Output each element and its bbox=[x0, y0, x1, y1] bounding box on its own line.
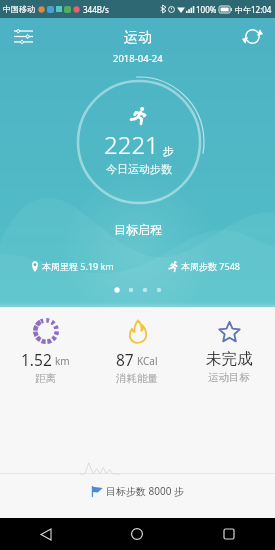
staticText: 目标步数 8000 步 bbox=[106, 484, 185, 498]
staticText: 运动目标 bbox=[208, 371, 250, 384]
button[interactable]: Settings bbox=[8, 21, 38, 51]
button[interactable]: Back bbox=[0, 518, 91, 550]
staticText: 2221 bbox=[104, 128, 159, 161]
staticText: km bbox=[55, 354, 70, 368]
staticText: 距离 bbox=[35, 372, 56, 385]
staticText: 100% bbox=[196, 4, 217, 15]
staticText: 1.52 bbox=[21, 349, 52, 370]
button[interactable]: 87 bbox=[91, 315, 183, 387]
staticText: 本周步数 7548 bbox=[181, 260, 240, 272]
staticText: 本周里程 5.19 km bbox=[42, 260, 114, 272]
staticText: 运动 bbox=[124, 29, 152, 47]
staticText: KCal bbox=[137, 354, 158, 368]
staticText: 87 bbox=[116, 349, 134, 370]
staticText: 今日运动步数 bbox=[106, 162, 172, 176]
button[interactable]: Recent apps bbox=[183, 518, 275, 550]
button[interactable]: Home bbox=[91, 518, 183, 550]
staticText: 未完成 bbox=[206, 349, 253, 369]
button[interactable]: 目标步数 8000 步 bbox=[91, 484, 185, 498]
button[interactable]: 1.52 bbox=[0, 315, 91, 387]
button[interactable]: 目标启程 bbox=[108, 220, 168, 239]
staticText: 步 bbox=[163, 144, 174, 158]
button[interactable]: 未完成 bbox=[183, 315, 275, 386]
staticText: 目标启程 bbox=[114, 222, 162, 237]
staticText: 消耗能量 bbox=[116, 372, 158, 385]
staticText: 344B/s bbox=[83, 4, 109, 15]
staticText: 2018-04-24 bbox=[113, 52, 163, 65]
button[interactable]: Refresh bbox=[237, 21, 267, 51]
staticText: 中午12:04 bbox=[235, 4, 272, 15]
staticText: 中国移动 bbox=[3, 4, 35, 14]
